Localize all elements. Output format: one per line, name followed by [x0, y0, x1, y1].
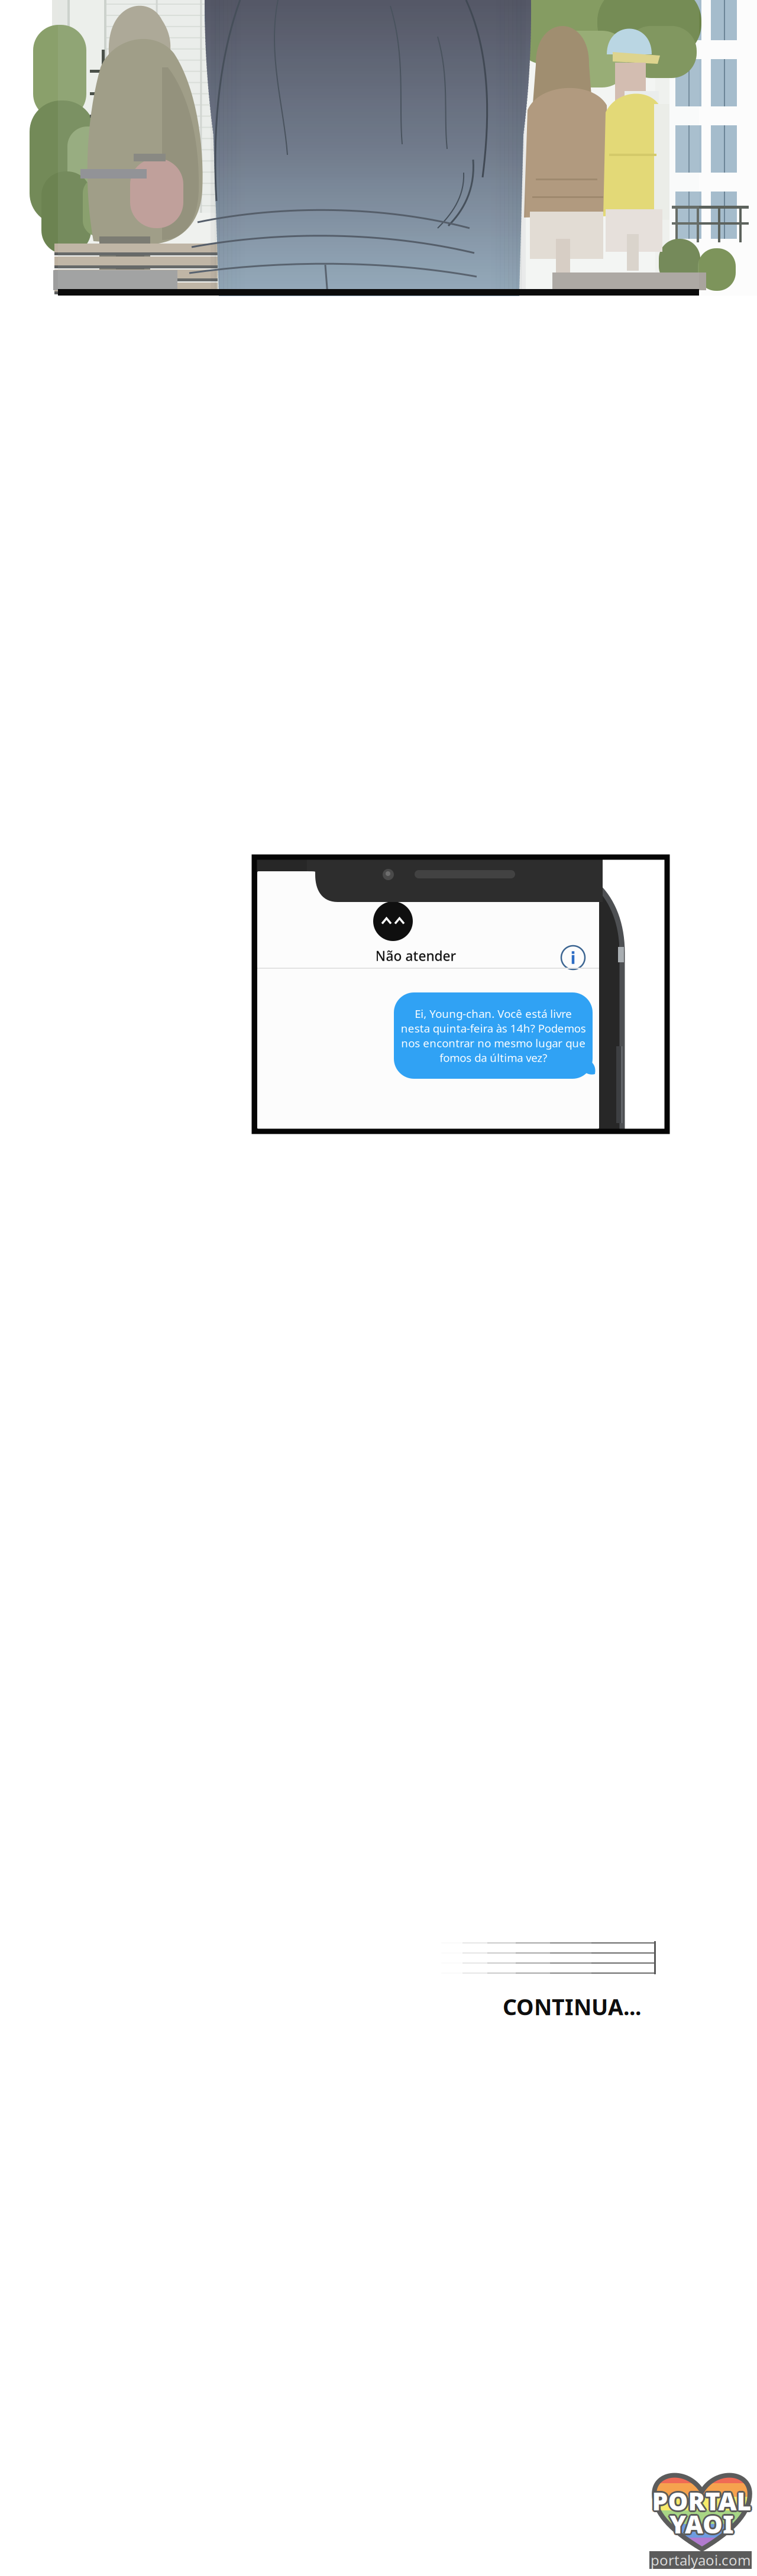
- staticText: YAOI: [671, 2506, 735, 2539]
- staticText: PORTAL: [652, 2486, 751, 2519]
- button[interactable]: Conversation details: [559, 943, 587, 972]
- staticText: YAOI: [669, 2507, 734, 2540]
- staticText: YAOI: [668, 2506, 733, 2539]
- staticText: Não atender: [375, 947, 456, 965]
- staticText: YAOI: [671, 2508, 735, 2542]
- staticText: YAOI: [671, 2507, 736, 2540]
- staticText: CONTINUA...: [503, 1992, 641, 2021]
- staticText: PORTAL: [651, 2485, 750, 2518]
- staticText: PORTAL: [652, 2482, 751, 2516]
- staticText: PORTAL: [653, 2483, 753, 2516]
- staticText: PORTAL: [653, 2485, 753, 2518]
- staticText: PORTAL: [650, 2484, 750, 2517]
- staticText: PORTAL: [652, 2484, 751, 2517]
- staticText: YAOI: [669, 2509, 734, 2542]
- staticText: portalyaoi.com: [651, 2551, 750, 2569]
- staticText: PORTAL: [651, 2483, 750, 2516]
- staticText: YAOI: [668, 2507, 732, 2540]
- staticText: PORTAL: [654, 2484, 753, 2517]
- staticText: YAOI: [669, 2505, 734, 2539]
- staticText: YAOI: [668, 2508, 733, 2542]
- staticText: Ei, Young-chan. Você está livre nesta qu…: [401, 1006, 586, 1065]
